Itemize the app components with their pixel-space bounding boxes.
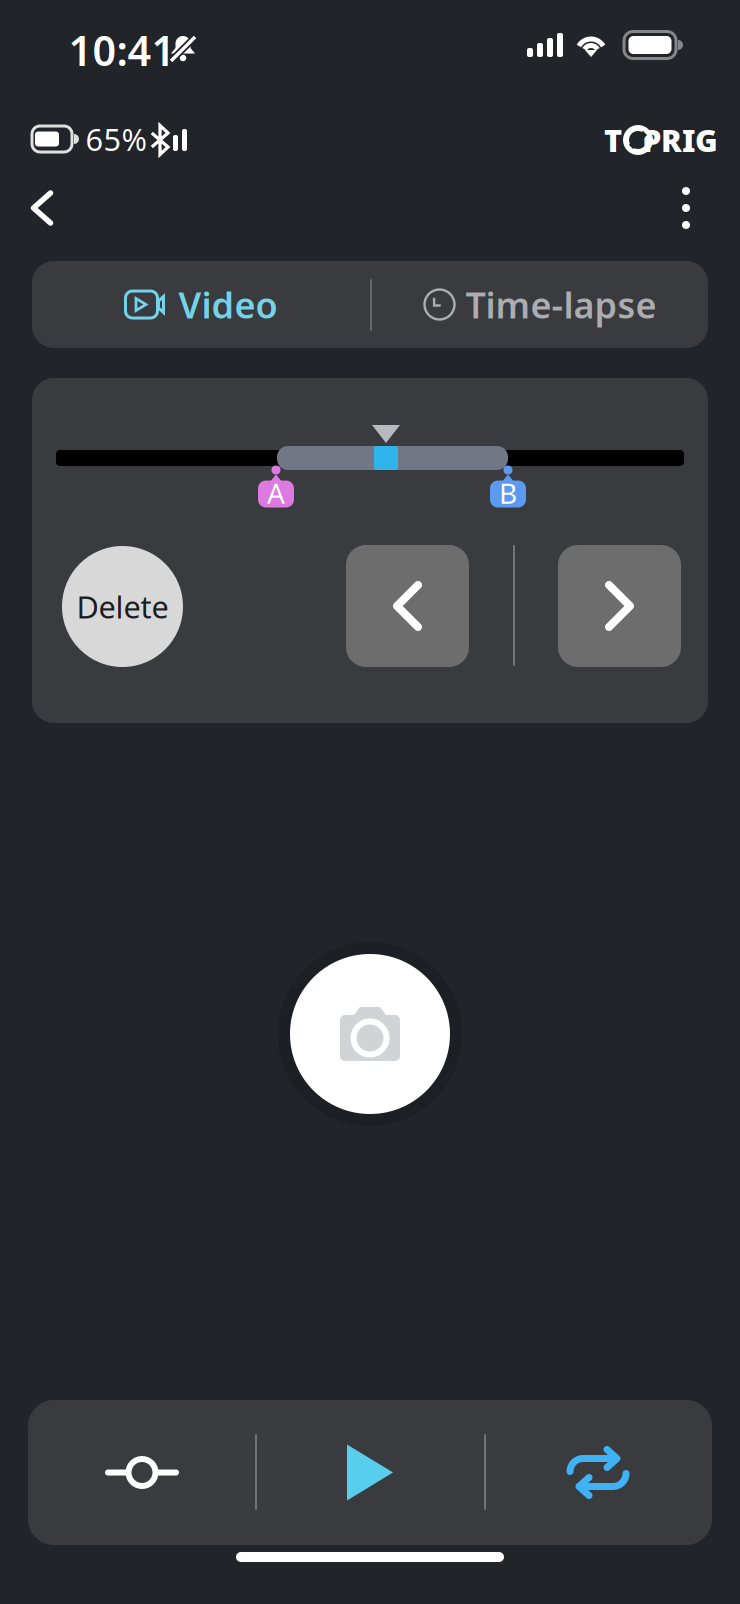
staticText: Delete	[76, 586, 168, 627]
staticText: 65%	[85, 119, 146, 159]
button[interactable]: Next clip	[0, 0, 740, 1604]
staticText: 10:41	[68, 23, 175, 77]
button[interactable]: Keyframe	[0, 0, 740, 1604]
staticText: Video	[178, 281, 277, 328]
staticText: B	[499, 474, 517, 512]
button[interactable]: Video	[0, 0, 740, 1604]
staticText: PRIG	[642, 120, 718, 160]
button[interactable]: Time-lapse	[0, 0, 740, 1604]
button[interactable]: Capture	[0, 0, 740, 1604]
button[interactable]: Back	[0, 0, 740, 1604]
staticText: A	[267, 474, 285, 512]
staticText: Time-lapse	[465, 281, 656, 328]
button[interactable]: Loop	[0, 0, 740, 1604]
button[interactable]: Previous clip	[0, 0, 740, 1604]
button[interactable]: Play	[0, 0, 740, 1604]
staticText: T	[604, 120, 622, 160]
button[interactable]: More options	[0, 0, 740, 1604]
button[interactable]: Delete	[0, 0, 740, 1604]
